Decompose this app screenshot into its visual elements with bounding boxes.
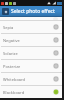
other: Selected bbox=[53, 89, 59, 95]
other: Not selected bbox=[53, 37, 59, 43]
button[interactable] bbox=[0, 17, 64, 21]
staticText: Solarize bbox=[3, 51, 53, 56]
other: Not selected bbox=[53, 24, 59, 30]
staticText: Negative bbox=[3, 38, 53, 43]
staticText: Sepia bbox=[3, 25, 53, 30]
button[interactable]: Posterize bbox=[0, 60, 64, 72]
staticText: Posterize bbox=[3, 64, 53, 69]
other: Not selected bbox=[53, 50, 59, 56]
button[interactable]: Solarize bbox=[0, 47, 64, 59]
other: Not selected bbox=[53, 63, 59, 69]
button[interactable]: Blackboard bbox=[0, 86, 64, 98]
button[interactable]: App icon, navigate up bbox=[2, 8, 9, 15]
staticText: Select photo effect bbox=[11, 8, 55, 15]
staticText: Whiteboard bbox=[3, 77, 53, 82]
button[interactable]: Whiteboard bbox=[0, 73, 64, 85]
staticText: Blackboard bbox=[3, 90, 53, 95]
button[interactable]: Negative bbox=[0, 34, 64, 46]
button[interactable]: Sepia bbox=[0, 21, 64, 33]
other: Not selected bbox=[53, 76, 59, 82]
